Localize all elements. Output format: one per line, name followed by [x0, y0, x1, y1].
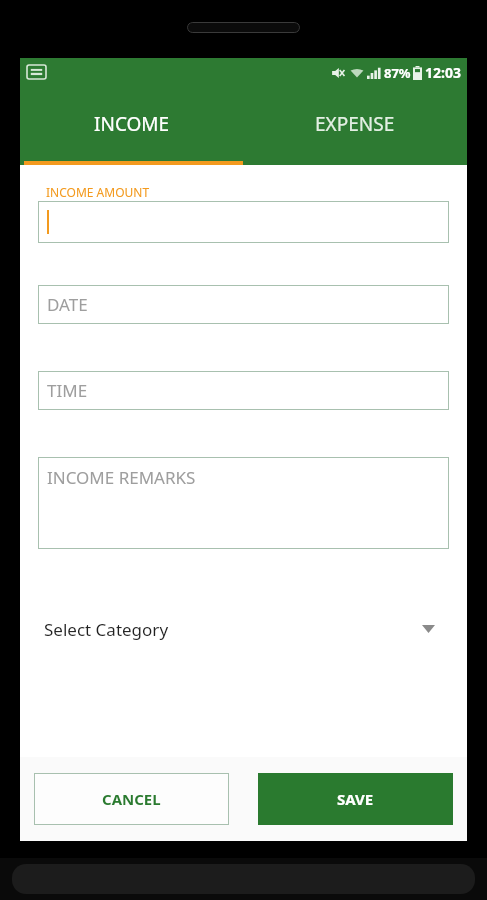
button[interactable]: Date — [38, 285, 449, 324]
staticText: CANCEL — [102, 789, 161, 809]
button[interactable]: CANCEL — [34, 773, 229, 825]
button[interactable] — [38, 201, 449, 243]
staticText: INCOME — [94, 111, 170, 137]
staticText: 12:03 — [425, 63, 461, 82]
button[interactable]: INCOME — [20, 86, 243, 161]
button[interactable]: EXPENSE — [243, 86, 467, 161]
staticText: 87% — [384, 64, 411, 82]
button[interactable]: Time — [38, 371, 449, 410]
staticText: EXPENSE — [315, 111, 395, 137]
staticText: SAVE — [337, 789, 374, 809]
staticText: Select Category — [44, 618, 169, 641]
staticText: INCOME REMARKS — [47, 466, 196, 489]
button[interactable]: INCOME REMARKS — [38, 457, 449, 549]
staticText: INCOME AMOUNT — [46, 184, 150, 200]
button[interactable]: SAVE — [258, 773, 453, 825]
staticText: TIME — [47, 379, 88, 402]
staticText: DATE — [47, 293, 88, 316]
button[interactable]: Select Category — [38, 607, 449, 651]
